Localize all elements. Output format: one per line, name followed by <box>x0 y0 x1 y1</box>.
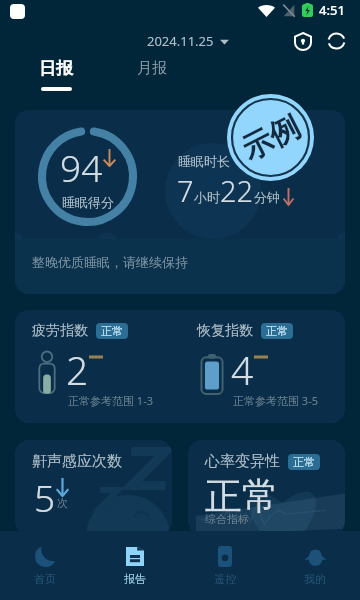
staticText: 4 <box>231 343 254 396</box>
button[interactable]: 日报 <box>39 58 73 91</box>
staticText: 小时 <box>194 189 220 205</box>
button[interactable]: 首页 <box>0 531 90 600</box>
button[interactable]: 我的 <box>270 531 360 600</box>
staticText: 4:51 <box>319 1 345 19</box>
staticText: 恢复指数 <box>197 322 253 340</box>
staticText: 示例 <box>236 107 306 169</box>
staticText: 正常参考范围 1-3 <box>68 393 153 408</box>
staticText: 日报 <box>39 58 73 79</box>
button[interactable]: Refresh <box>324 29 348 53</box>
button[interactable]: 鼾声感应次数 <box>15 440 172 535</box>
staticText: 5 <box>34 472 56 522</box>
staticText: 鼾声感应次数 <box>32 452 122 471</box>
staticText: 月报 <box>137 59 167 78</box>
staticText: 疲劳指数 <box>32 322 88 340</box>
button[interactable]: 2024.11.25 <box>147 32 229 50</box>
button[interactable]: 月报 <box>137 59 167 78</box>
staticText: 正常 <box>266 324 288 338</box>
staticText: 正常参考范围 3-5 <box>233 393 318 408</box>
staticText: 我的 <box>304 572 326 586</box>
staticText: 正常 <box>293 455 315 469</box>
button[interactable]: 心率变异性 <box>188 440 345 535</box>
button[interactable]: 疲劳指数 <box>15 310 180 423</box>
staticText: 遥控 <box>214 572 236 586</box>
staticText: 整晚优质睡眠，请继续保持 <box>32 254 188 270</box>
staticText: 2 <box>66 343 89 396</box>
staticText: 睡眠时长 <box>178 153 230 169</box>
staticText: 分钟 <box>254 189 280 205</box>
staticText: 2024.11.25 <box>147 32 214 50</box>
button[interactable]: 94 <box>15 110 345 294</box>
button[interactable]: 遥控 <box>180 531 270 600</box>
staticText: 综合指标 <box>205 512 249 526</box>
staticText: 报告 <box>124 572 146 586</box>
button[interactable]: Security <box>291 29 315 53</box>
staticText: 94 <box>60 142 103 192</box>
button[interactable]: 恢复指数 <box>180 310 345 423</box>
staticText: 7 <box>177 171 194 210</box>
staticText: 22 <box>220 171 254 210</box>
staticText: 次 <box>57 496 68 510</box>
staticText: 正常 <box>101 324 123 338</box>
staticText: 首页 <box>34 572 56 586</box>
staticText: 心率变异性 <box>205 452 280 471</box>
staticText: 正常 <box>205 473 279 520</box>
staticText: 睡眠得分 <box>62 194 114 210</box>
button[interactable]: 报告 <box>90 531 180 600</box>
